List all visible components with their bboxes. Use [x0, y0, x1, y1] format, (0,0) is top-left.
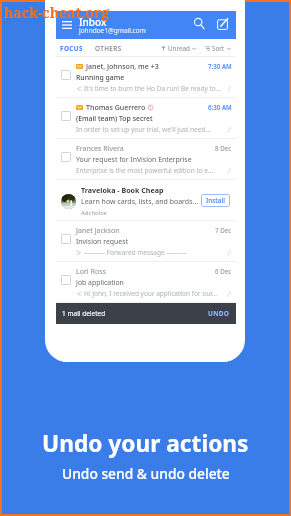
- staticText: Undo send & undo delete: [62, 464, 230, 483]
- staticText: Install: [206, 196, 225, 205]
- staticText: Job application: [76, 278, 124, 287]
- staticText: In order to set up your trial, we'll jus…: [76, 125, 211, 134]
- button[interactable]: Select email: [56, 98, 236, 139]
- staticText: (Email team) Top secret: [76, 114, 153, 123]
- button[interactable]: Sort: [203, 41, 233, 56]
- button[interactable]: 1 mail deleted: [56, 303, 236, 324]
- button[interactable]: Install: [201, 194, 230, 207]
- button[interactable]: Compose: [213, 15, 231, 33]
- staticText: 8 Dec: [215, 144, 232, 152]
- staticText: 1 mail deleted: [62, 309, 106, 318]
- staticText: 7:30 AM: [208, 62, 232, 70]
- button[interactable]: Menu: [58, 16, 75, 33]
- staticText: Traveloka - Book Cheap: [81, 185, 164, 195]
- staticText: Unread: [168, 44, 190, 53]
- button[interactable]: Select email: [56, 221, 236, 262]
- staticText: Running game: [76, 73, 125, 82]
- button[interactable]: Select email: [56, 139, 236, 180]
- staticText: Hi John, I received your application for…: [84, 289, 218, 298]
- staticText: 7 Dec: [215, 226, 232, 234]
- staticText: 6:30 AM: [208, 103, 232, 111]
- staticText: johndoe1@gmail.com: [79, 26, 146, 35]
- staticText: Invision request: [76, 237, 128, 246]
- button[interactable]: Select email: [56, 57, 236, 98]
- staticText: Learn how cards, lists, and boards...: [81, 197, 199, 207]
- staticText: Inbox: [79, 15, 107, 29]
- staticText: Frances Rivera: [76, 143, 124, 153]
- staticText: hack-cheat.org: [4, 3, 110, 22]
- button[interactable]: Select email: [61, 152, 71, 162]
- staticText: Lori Ross: [76, 266, 106, 276]
- staticText: Janet, Johnson, me +3: [86, 61, 159, 71]
- staticText: Undo your actions: [42, 428, 249, 459]
- staticText: Sort: [212, 44, 225, 53]
- button[interactable]: UNDO: [208, 309, 230, 318]
- staticText: OTHERS: [95, 44, 122, 53]
- staticText: ---------- Forwared message ----------: [84, 248, 188, 257]
- button[interactable]: Traveloka - Book Cheap: [56, 180, 236, 221]
- button[interactable]: Select email: [61, 70, 71, 80]
- staticText: 6 Dec: [215, 267, 232, 275]
- staticText: Janet Jackson: [76, 225, 120, 235]
- staticText: It's time to burn the Ho Da run! Be read…: [84, 84, 221, 93]
- button[interactable]: Select email: [56, 262, 236, 303]
- staticText: Your request for InVision Enterprise: [76, 155, 192, 164]
- button[interactable]: OTHERS: [92, 41, 125, 56]
- button[interactable]: Select email: [61, 275, 71, 285]
- button[interactable]: Unread: [159, 41, 198, 56]
- button[interactable]: FOCUS: [57, 41, 86, 56]
- staticText: Thomas Guerrero: [86, 102, 146, 112]
- staticText: FOCUS: [60, 44, 83, 53]
- button[interactable]: Select email: [61, 234, 71, 244]
- button[interactable]: Search: [190, 15, 208, 33]
- staticText: UNDO: [208, 309, 230, 318]
- staticText: Enterprise is the most powerful edition …: [76, 166, 214, 175]
- button[interactable]: Select email: [61, 111, 71, 121]
- staticText: Adchoice: [81, 209, 107, 217]
